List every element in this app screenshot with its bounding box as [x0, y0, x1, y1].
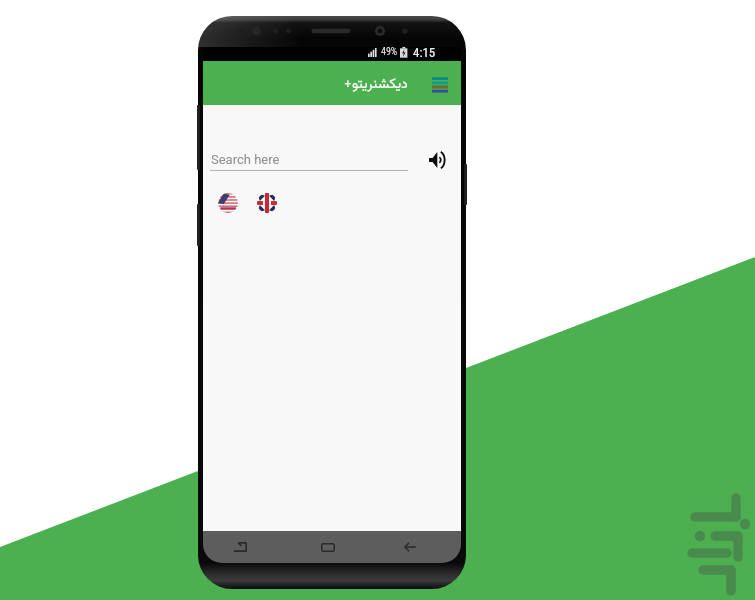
button[interactable]: American English [218, 193, 238, 213]
staticText: Search here [211, 152, 280, 167]
button[interactable]: Search here [210, 148, 408, 176]
button[interactable]: Home [311, 535, 345, 559]
staticText: دیکشنریتو [352, 74, 408, 96]
button[interactable]: Recents [223, 535, 257, 559]
staticText: + [344, 74, 352, 96]
button[interactable]: Back [393, 535, 427, 559]
button[interactable]: Menu [427, 72, 453, 98]
button[interactable]: Speak [423, 146, 451, 174]
staticText: 49% [381, 47, 398, 58]
button[interactable]: British English [257, 193, 277, 213]
staticText: 4:15 [413, 47, 436, 59]
